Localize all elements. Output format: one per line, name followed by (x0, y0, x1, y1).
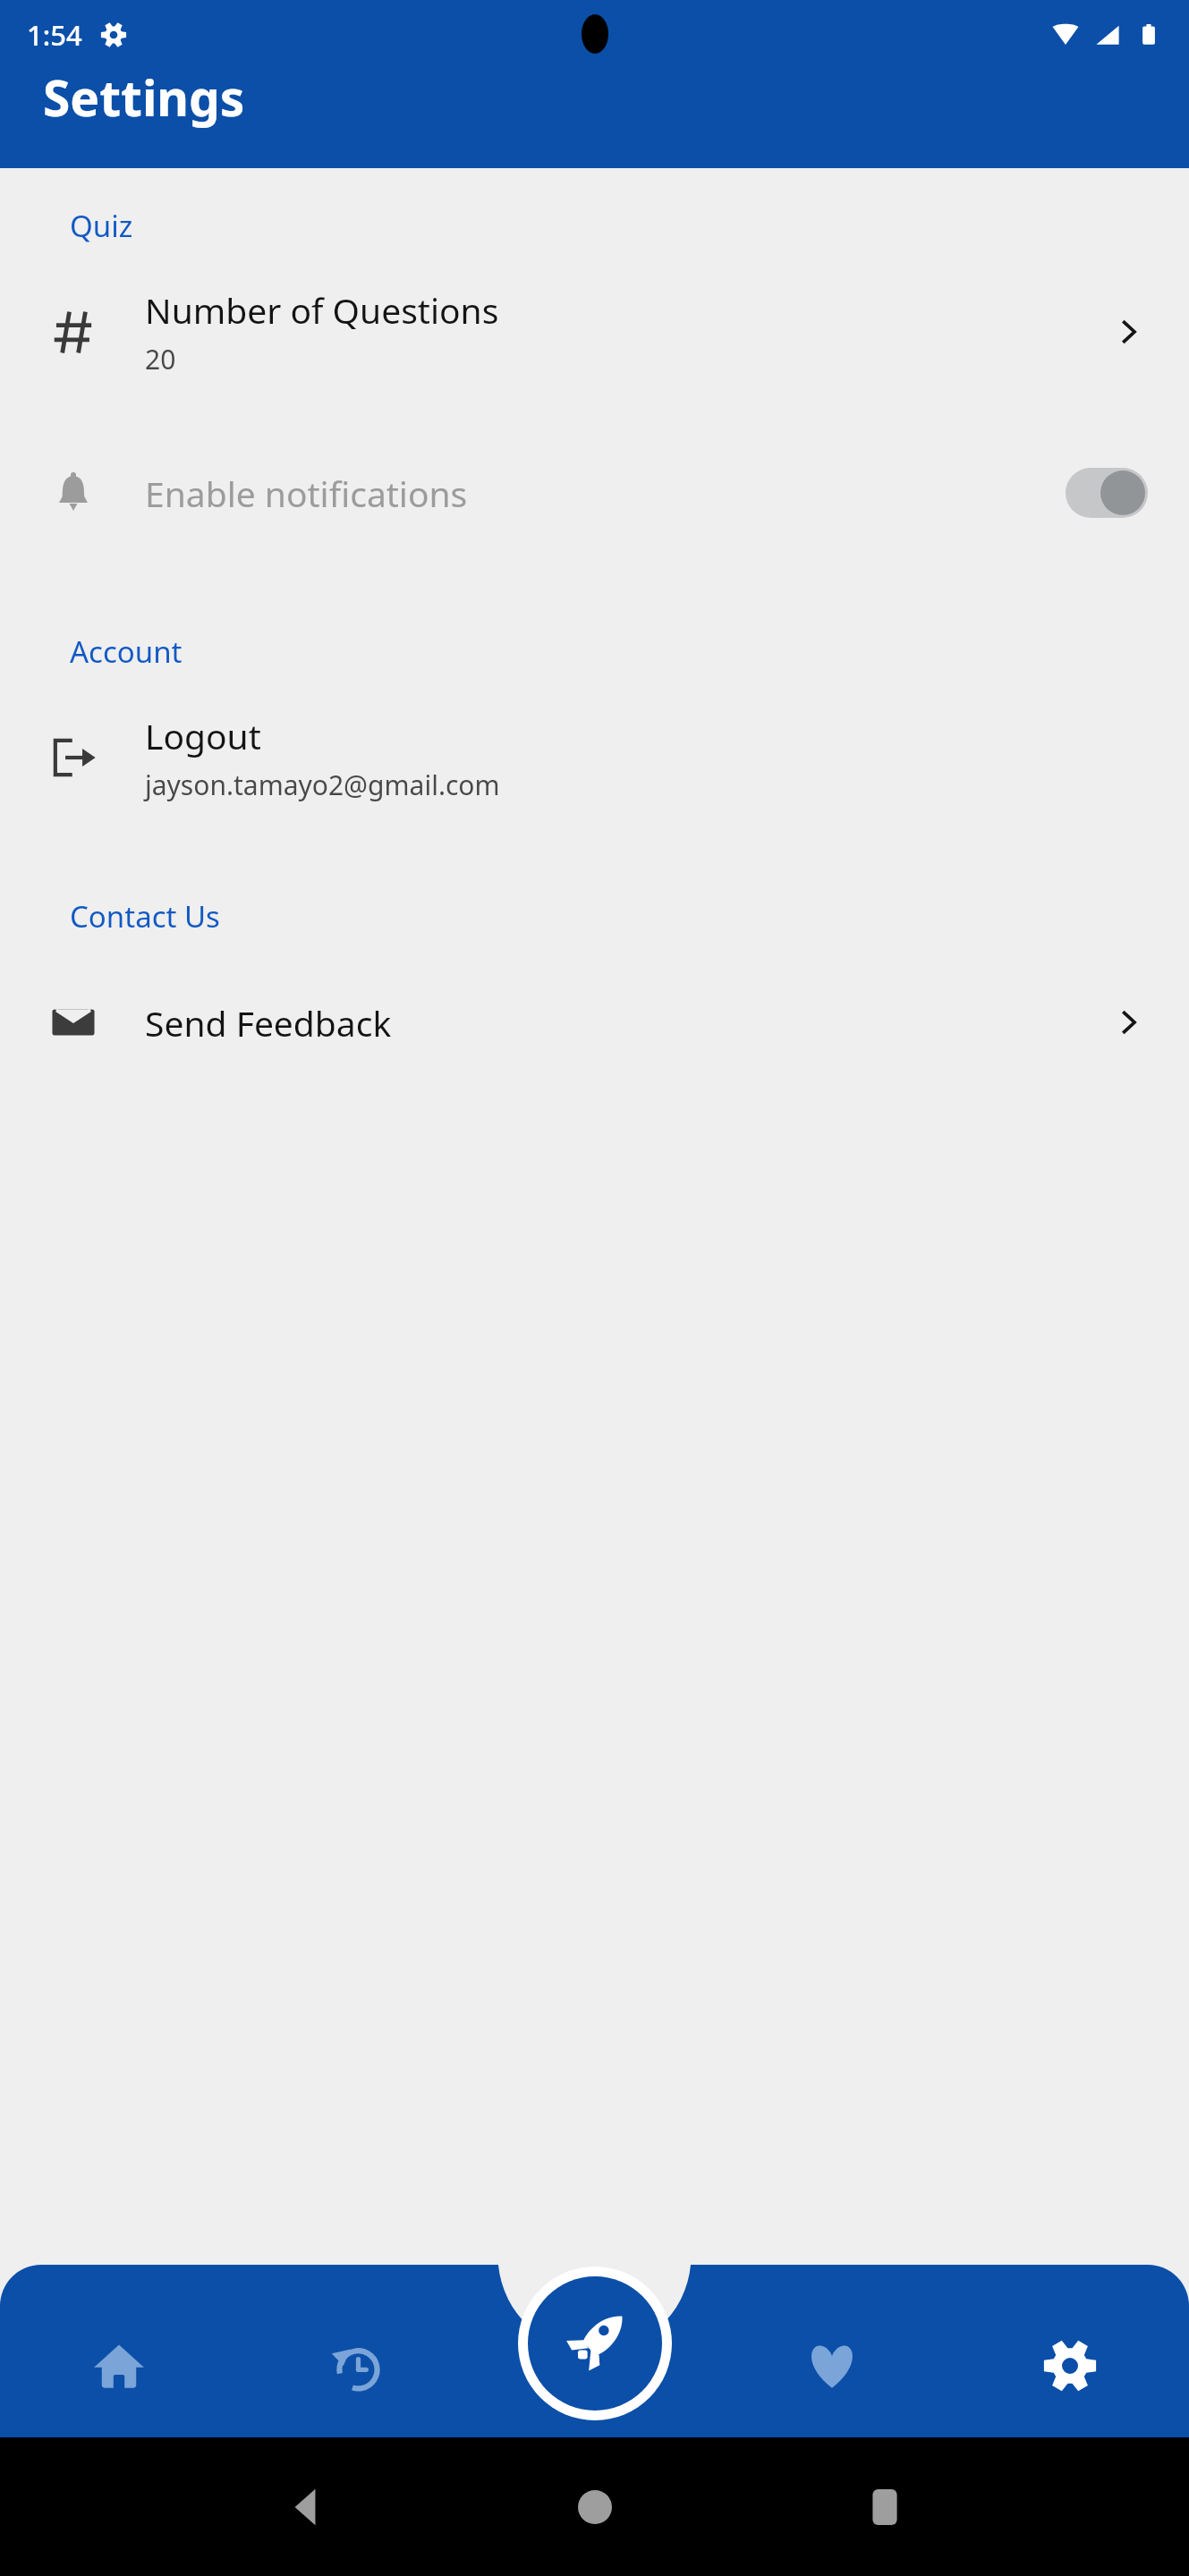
button[interactable]: Enable notifications (0, 426, 1189, 560)
button[interactable]: Settings (951, 2265, 1189, 2437)
button[interactable]: Favorites (713, 2265, 951, 2437)
staticText: Settings (43, 64, 245, 131)
staticText: Number of Questions (145, 286, 499, 334)
staticText: 1:54 (27, 16, 82, 54)
button[interactable]: Start (528, 2276, 662, 2411)
staticText: Contact Us (70, 896, 220, 936)
button[interactable]: Home (564, 2476, 626, 2538)
staticText: 20 (145, 341, 176, 377)
staticText: Enable notifications (145, 470, 468, 517)
button[interactable]: History (237, 2265, 475, 2437)
button[interactable]: Send Feedback (0, 955, 1189, 1089)
button[interactable]: Home (0, 2265, 237, 2437)
button[interactable]: Back (274, 2476, 336, 2538)
button[interactable]: Recents (854, 2476, 916, 2538)
button[interactable]: Enable notifications (1066, 468, 1148, 518)
staticText: jayson.tamayo2@gmail.com (145, 767, 500, 803)
staticText: Send Feedback (145, 999, 392, 1046)
staticText: Quiz (70, 206, 133, 246)
staticText: Logout (145, 712, 261, 759)
staticText: Account (70, 631, 183, 672)
button[interactable]: Logout (0, 691, 1189, 825)
button[interactable]: Number of Questions (0, 265, 1189, 399)
